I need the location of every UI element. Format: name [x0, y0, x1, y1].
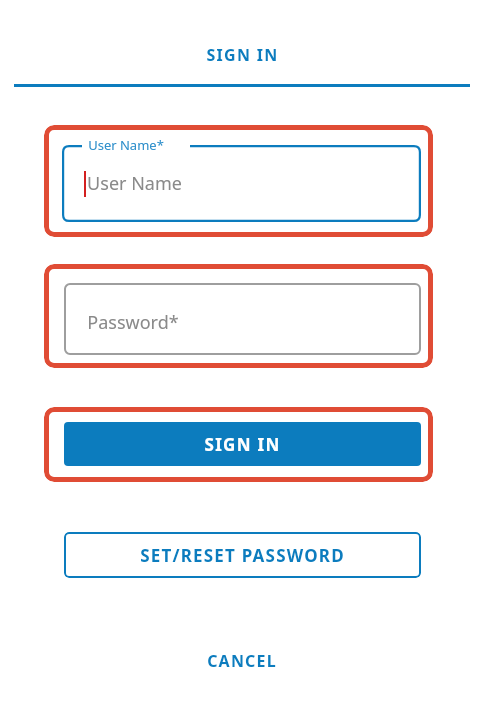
staticText: CANCEL	[207, 650, 277, 672]
staticText: SIGN IN	[204, 433, 281, 456]
staticText: SET/RESET PASSWORD	[140, 544, 345, 567]
staticText: Password*	[87, 310, 179, 335]
button[interactable]: User Name*	[62, 145, 421, 222]
staticText: SIGN IN	[206, 44, 279, 66]
button[interactable]: Password*	[64, 283, 421, 355]
button[interactable]: SIGN IN	[64, 422, 421, 466]
button[interactable]: CANCEL	[0, 642, 484, 680]
staticText: User Name*	[88, 136, 164, 154]
staticText: User Name	[87, 171, 182, 196]
button[interactable]: SET/RESET PASSWORD	[64, 532, 421, 578]
